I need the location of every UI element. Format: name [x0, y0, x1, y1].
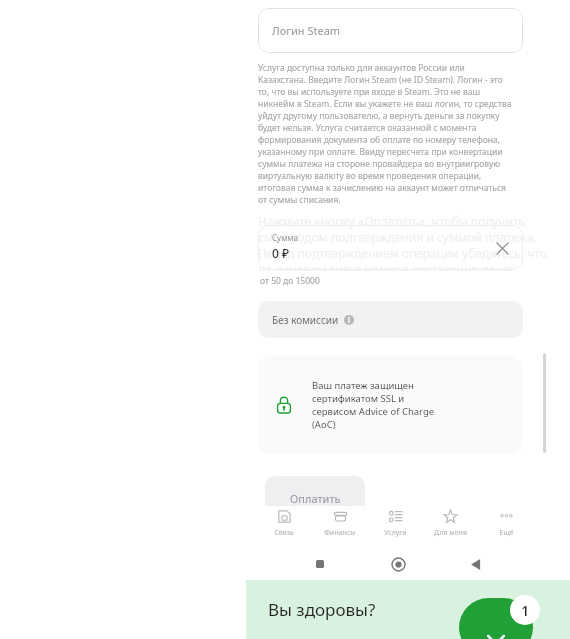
staticText: Перед подтверждением операции убедитесь,… [258, 245, 548, 261]
staticText: смс с кодом подтверждения и суммой плате… [258, 229, 537, 245]
staticText: Ещё [499, 528, 514, 538]
staticText: Сумма [272, 232, 298, 243]
staticText: Оплатить [290, 491, 341, 506]
staticText: Без комиссии [272, 313, 339, 327]
staticText: Услуга доступна только для аккаунтов Рос… [258, 62, 465, 74]
staticText: Казахстана. Введите Логин Steam (не ID S… [258, 74, 503, 86]
staticText: никнейм в Steam. Если вы укажете не ваш … [258, 98, 512, 110]
staticText: итоговая сумма к зачислению на аккаунт м… [258, 182, 506, 194]
staticText: Вы здоровы? [268, 598, 376, 621]
staticText: Финансы [324, 528, 356, 538]
button[interactable]: Вы здоровы? [246, 580, 570, 639]
button[interactable]: Очистить [491, 237, 513, 259]
button[interactable]: 1 [510, 595, 540, 625]
button[interactable]: Ещё [480, 507, 532, 538]
button[interactable]: Без комиссии [258, 301, 523, 338]
staticText: формирования документа об оплате по номе… [258, 134, 501, 146]
staticText: Связь [274, 528, 294, 538]
staticText: Для меня [434, 528, 467, 538]
button[interactable]: Услуги [369, 507, 421, 538]
button[interactable]: Финансы [314, 507, 366, 538]
button[interactable]: Home [385, 551, 411, 577]
button[interactable]: Back [462, 551, 488, 577]
staticText: 1 [521, 600, 530, 620]
staticText: на лицевом счете номера достаточно денег [258, 261, 515, 271]
staticText: от 50 до 15000 [260, 275, 320, 287]
button[interactable]: Recents [307, 551, 333, 577]
button[interactable]: Сумма [258, 225, 523, 270]
staticText: сервисом Advice of Charge [312, 405, 435, 418]
staticText: Логин Steam [272, 23, 341, 38]
staticText: указанному при оплате. Ввиду пересчета п… [258, 146, 503, 158]
staticText: будет нельзя. Услуга считается оказанной… [258, 122, 477, 134]
button[interactable]: Оплатить [265, 476, 365, 506]
staticText: то, что вы используете при входе в Steam… [258, 86, 480, 98]
staticText: 0 ₽ [272, 245, 290, 261]
staticText: от суммы списания. [258, 194, 341, 206]
staticText: уйдут другому пользователю, а вернуть де… [258, 110, 500, 122]
staticText: Ваш платеж защищен [312, 379, 414, 392]
staticText: виртуальную валюту во время проведения о… [258, 170, 482, 182]
button[interactable]: Связь [258, 507, 310, 538]
staticText: Нажмите кнопку «Оплатить», чтобы получит… [258, 213, 526, 229]
staticText: суммы платежа на стороне провайдера во в… [258, 158, 501, 170]
staticText: Услуги [384, 528, 407, 538]
button[interactable]: Развернуть [459, 598, 533, 639]
staticText: (AoC) [312, 418, 336, 431]
button[interactable]: Логин Steam [258, 8, 523, 53]
staticText: сертификатом SSL и [312, 392, 405, 405]
button[interactable]: Для меня [424, 507, 476, 538]
button[interactable]: Ваш платеж защищен [258, 356, 523, 454]
